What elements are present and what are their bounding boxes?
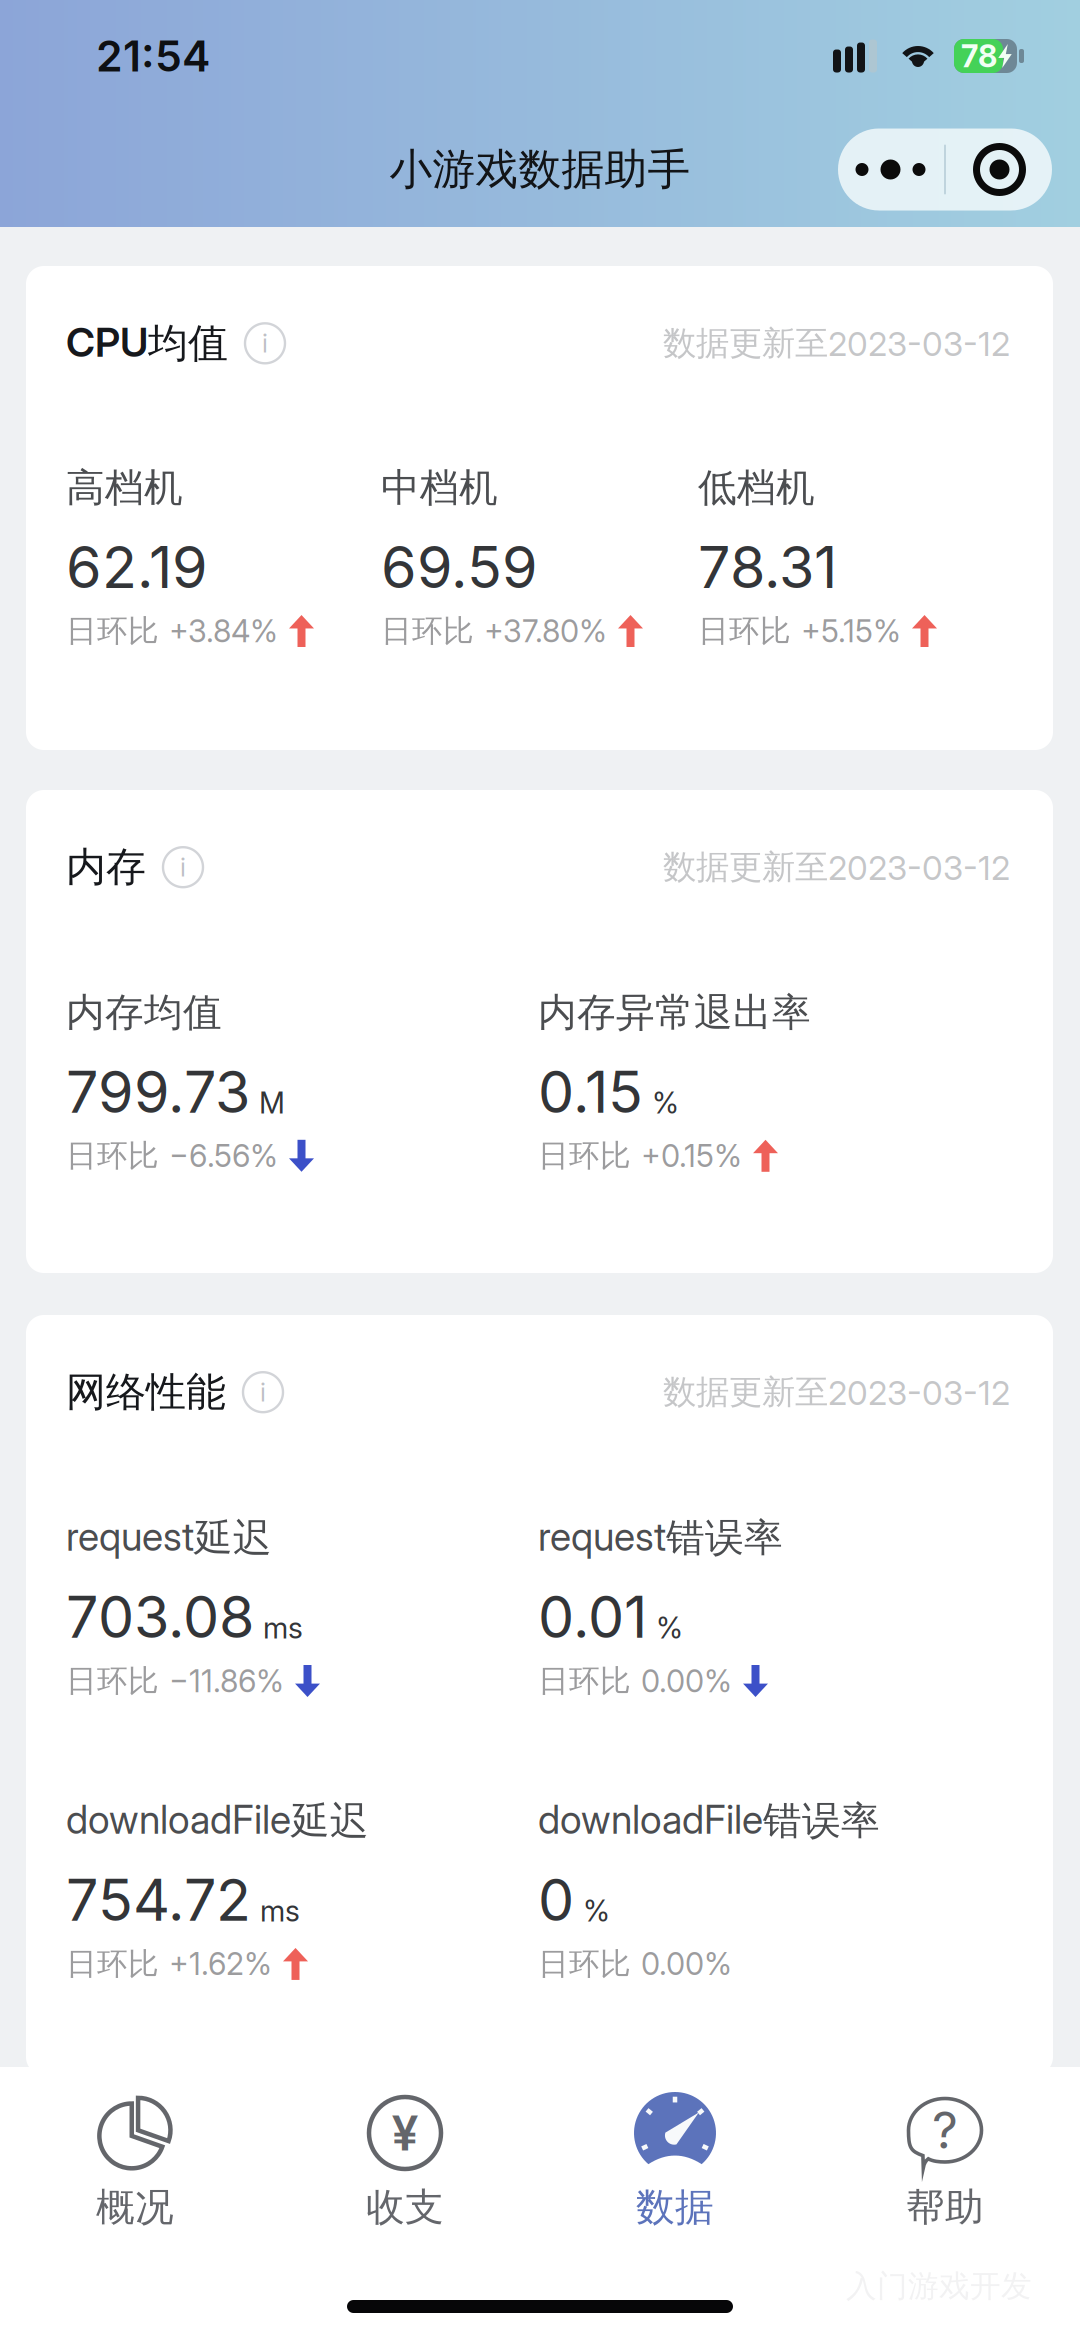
staticText: % <box>656 1610 683 1646</box>
staticText: 数据更新至2023-03-12 <box>663 322 1010 364</box>
button[interactable]: Mini program menu <box>838 128 1052 210</box>
button[interactable]: ? <box>810 2067 1080 2250</box>
staticText: 754.72 <box>66 1865 251 1935</box>
staticText: i <box>180 852 186 883</box>
staticText: 69.59 <box>381 532 538 602</box>
staticText: 入门游戏开发 <box>846 2267 1032 2306</box>
staticText: 78.31 <box>698 532 837 602</box>
staticText: 0.00% <box>641 1945 732 1982</box>
button[interactable]: 数据 <box>540 2067 810 2250</box>
staticText: 日环比 <box>66 1945 159 1983</box>
staticText: 日环比 <box>381 612 474 650</box>
staticText: CPU均值 <box>66 318 228 369</box>
staticText: 概况 <box>96 2183 174 2232</box>
staticText: +5.15% <box>801 612 901 650</box>
button[interactable]: ¥ <box>270 2067 540 2250</box>
staticText: i <box>262 328 268 359</box>
staticText: 小游戏数据助手 <box>389 143 690 196</box>
staticText: 内存异常退出率 <box>538 988 811 1037</box>
staticText: 703.08 <box>66 1582 254 1652</box>
staticText: 数据更新至2023-03-12 <box>663 1371 1010 1413</box>
staticText: +3.84% <box>169 612 278 650</box>
staticText: 78 <box>961 37 997 74</box>
staticText: 0.00% <box>641 1662 732 1700</box>
staticText: 数据 <box>636 2183 714 2232</box>
button[interactable]: 概况 <box>0 2067 270 2250</box>
staticText: −6.56% <box>169 1137 278 1174</box>
staticText: 日环比 <box>66 1136 159 1175</box>
staticText: 内存 <box>66 842 146 892</box>
staticText: 0.15 <box>538 1057 643 1126</box>
staticText: 内存均值 <box>66 988 222 1037</box>
staticText: 网络性能 <box>66 1367 226 1417</box>
staticText: request错误率 <box>538 1513 783 1562</box>
staticText: 日环比 <box>698 612 791 650</box>
staticText: % <box>652 1085 679 1120</box>
staticText: 低档机 <box>698 464 815 512</box>
staticText: 日环比 <box>66 612 159 650</box>
staticText: i <box>260 1377 266 1408</box>
staticText: M <box>259 1085 285 1120</box>
staticText: ¥ <box>391 2104 418 2162</box>
staticText: downloadFile延迟 <box>66 1796 369 1845</box>
staticText: 日环比 <box>538 1945 631 1983</box>
staticText: 日环比 <box>66 1662 159 1700</box>
staticText: 0.01 <box>538 1582 647 1652</box>
staticText: 帮助 <box>906 2183 984 2232</box>
staticText: ms <box>263 1610 303 1646</box>
staticText: downloadFile错误率 <box>538 1796 880 1845</box>
staticText: 中档机 <box>381 464 498 512</box>
staticText: ms <box>260 1893 300 1929</box>
staticText: 21:54 <box>96 30 210 82</box>
staticText: +1.62% <box>169 1945 272 1982</box>
staticText: 0 <box>538 1865 574 1935</box>
staticText: 日环比 <box>538 1136 631 1175</box>
staticText: 62.19 <box>66 532 208 602</box>
staticText: +37.80% <box>484 612 607 650</box>
staticText: ? <box>932 2099 958 2161</box>
staticText: 收支 <box>366 2183 444 2232</box>
staticText: 高档机 <box>66 464 183 512</box>
staticText: 日环比 <box>538 1662 631 1700</box>
staticText: request延迟 <box>66 1513 272 1562</box>
staticText: % <box>583 1893 610 1929</box>
staticText: −11.86% <box>169 1662 284 1700</box>
staticText: 数据更新至2023-03-12 <box>663 846 1010 888</box>
staticText: 799.73 <box>66 1057 250 1126</box>
staticText: +0.15% <box>641 1137 742 1174</box>
